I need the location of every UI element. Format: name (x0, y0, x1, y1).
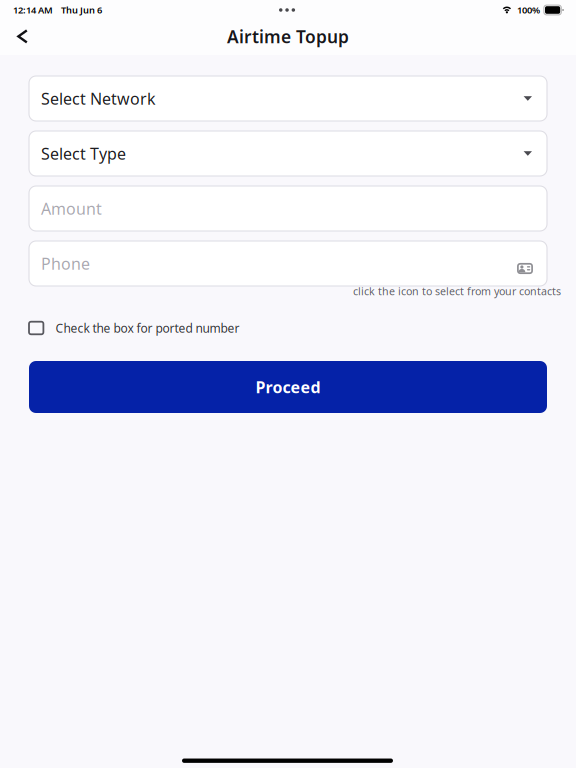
button[interactable]: Back (0, 21, 42, 52)
button[interactable]: Check the box for ported number (29, 320, 547, 336)
staticText: click the icon to select from your conta… (353, 284, 561, 298)
button[interactable]: Select from contacts (501, 249, 535, 278)
staticText: Airtime Topup (227, 25, 349, 48)
button[interactable]: Proceed (29, 361, 547, 413)
staticText: Select Network (41, 88, 156, 109)
staticText: Check the box for ported number (55, 320, 239, 336)
staticText: Proceed (255, 376, 320, 398)
button[interactable]: Select Network (29, 76, 547, 121)
staticText: Amount (41, 198, 102, 219)
staticText: 12:14 AM (13, 4, 53, 16)
staticText: Select Type (41, 143, 126, 164)
staticText: 100% (517, 4, 540, 16)
staticText: Thu Jun 6 (61, 4, 102, 16)
staticText: Phone (41, 253, 90, 274)
button[interactable]: Select Type (29, 131, 547, 176)
